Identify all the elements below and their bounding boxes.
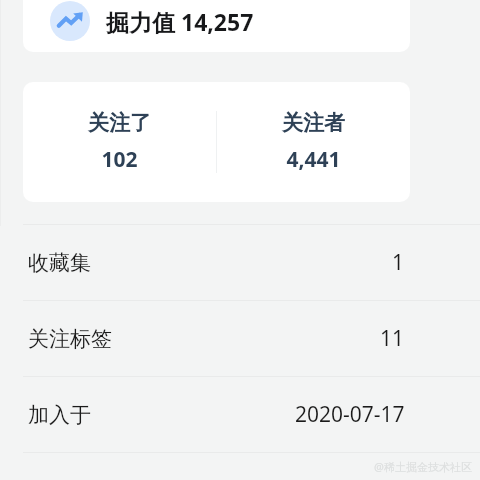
button[interactable]: 关注了 <box>23 82 216 202</box>
staticText: 11 <box>380 324 405 353</box>
button[interactable]: 加入于 <box>0 377 480 452</box>
staticText: 关注标签 <box>28 326 112 352</box>
staticText: 102 <box>101 145 138 174</box>
staticText: 1 <box>392 248 405 277</box>
staticText: 收藏集 <box>28 250 91 276</box>
other: 掘力值 <box>50 1 90 41</box>
button[interactable]: 掘力值 <box>23 0 410 52</box>
staticText: 关注了 <box>88 110 151 136</box>
button[interactable]: 关注者 <box>216 82 410 202</box>
staticText: 加入于 <box>28 402 91 428</box>
button[interactable]: 关注标签 <box>0 301 480 376</box>
button[interactable]: 收藏集 <box>0 225 480 300</box>
staticText: 2020-07-17 <box>295 400 405 429</box>
staticText: 关注者 <box>282 110 345 136</box>
staticText: 掘力值 14,257 <box>106 6 254 37</box>
staticText: @稀土掘金技术社区 <box>374 459 472 474</box>
staticText: 4,441 <box>286 145 341 174</box>
